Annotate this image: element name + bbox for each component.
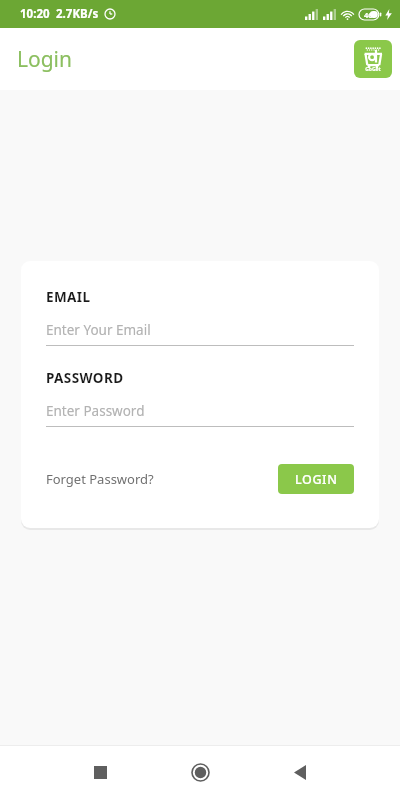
button[interactable]: Home	[150, 745, 250, 800]
button[interactable]: Enter Your Email	[46, 321, 354, 346]
button[interactable]: LOGIN	[278, 464, 354, 494]
button[interactable]: Enter Password	[46, 402, 354, 427]
button[interactable]: Back	[250, 745, 350, 800]
staticText: GoGet	[365, 66, 381, 73]
staticText: Enter Your Email	[46, 321, 151, 339]
button[interactable]: Forget Password?	[46, 466, 154, 492]
staticText: LOGIN	[295, 471, 338, 488]
staticText: EMAIL	[46, 288, 91, 306]
staticText: PASSWORD	[46, 369, 124, 387]
button[interactable]: Recents	[50, 745, 150, 800]
staticText: Forget Password?	[46, 470, 154, 488]
staticText: Enter Password	[46, 402, 145, 420]
staticText: 46	[364, 10, 373, 20]
staticText: Login	[17, 45, 73, 74]
staticText: 10:20	[20, 6, 50, 22]
staticText: 2.7KB/s	[56, 6, 99, 22]
button[interactable]: GoGet logo	[354, 40, 392, 78]
